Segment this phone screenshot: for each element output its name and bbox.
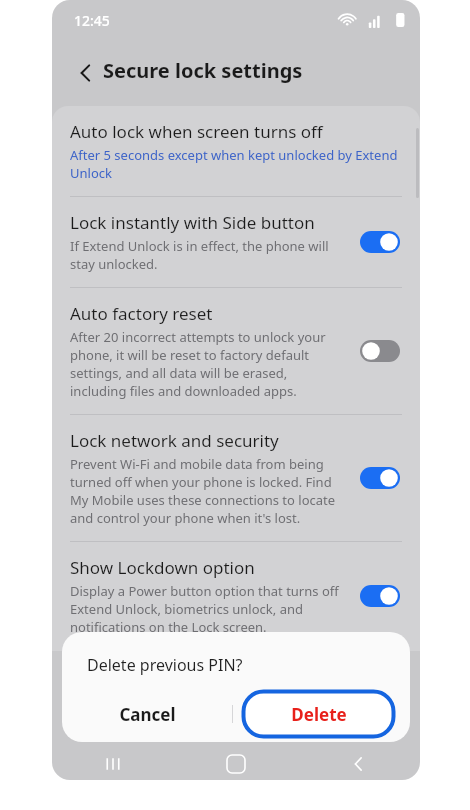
button[interactable]: Back	[297, 748, 420, 780]
staticText: Display a Power button option that turns…	[70, 582, 346, 636]
staticText: Show Lockdown option	[70, 556, 255, 579]
button[interactable]: Recents	[52, 748, 174, 780]
staticText: Delete previous PIN?	[87, 654, 243, 676]
button[interactable]: Lock instantly with Side button	[52, 197, 420, 287]
button[interactable]: On	[354, 461, 406, 495]
button[interactable]: Show Lockdown option	[52, 542, 420, 650]
staticText: Delete	[291, 703, 347, 726]
button[interactable]: Home	[174, 748, 297, 780]
button[interactable]: Delete	[241, 689, 396, 739]
staticText: After 20 incorrect attempts to unlock yo…	[70, 328, 346, 400]
staticText: Lock instantly with Side button	[70, 211, 315, 234]
button[interactable]: Back	[62, 49, 110, 97]
staticText: Lock network and security	[70, 429, 279, 452]
staticText: Auto factory reset	[70, 302, 213, 325]
staticText: Cancel	[119, 703, 176, 726]
button[interactable]: On	[354, 579, 406, 613]
button[interactable]: Off	[354, 334, 406, 368]
staticText: After 5 seconds except when kept unlocke…	[70, 146, 398, 182]
staticText: Prevent Wi-Fi and mobile data from being…	[70, 455, 346, 527]
button[interactable]: Auto lock when screen turns off	[52, 106, 420, 196]
button[interactable]: Cancel	[62, 690, 232, 738]
staticText: 12:45	[74, 11, 110, 30]
staticText: If Extend Unlock is in effect, the phone…	[70, 237, 346, 273]
button[interactable]: On	[354, 225, 406, 259]
button[interactable]: Lock network and security	[52, 415, 420, 541]
button[interactable]: Auto factory reset	[52, 288, 420, 414]
staticText: Auto lock when screen turns off	[70, 120, 323, 143]
staticText: Secure lock settings	[103, 57, 303, 84]
